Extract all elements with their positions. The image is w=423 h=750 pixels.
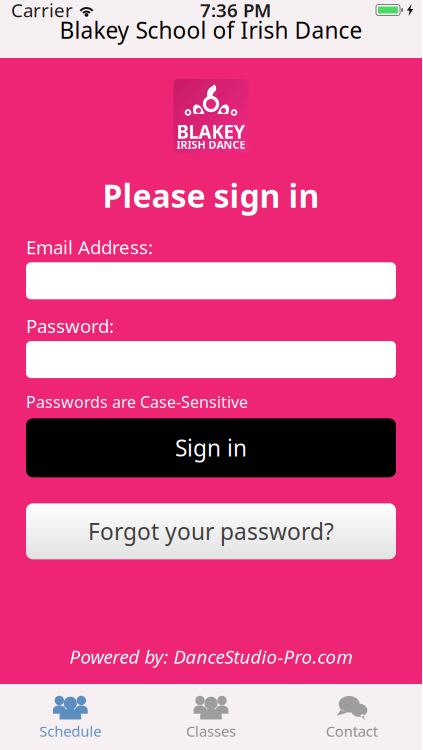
staticText: Blakey School of Irish Dance [59,15,362,45]
staticText: IRISH DANCE [176,137,245,152]
staticText: Forgot your password? [88,516,334,546]
button[interactable]: Classes [141,687,281,747]
staticText: Passwords are Case-Sensitive [26,391,248,412]
staticText: Please sign in [102,174,319,216]
staticText: 7:36 PM [200,0,271,22]
staticText: Email Address: [26,234,153,259]
staticText: Carrier [11,0,73,22]
staticText: Schedule [39,721,101,741]
staticText: Contact [326,721,378,741]
staticText: Classes [186,721,236,741]
staticText: BLAKEY [176,119,245,144]
button[interactable]: Sign in [26,418,396,477]
button[interactable]: Forgot your password? [26,503,396,559]
staticText: Password: [26,313,114,338]
button[interactable]: Contact [281,687,422,747]
staticText: Powered by: DanceStudio-Pro.com [69,644,352,669]
staticText: Sign in [175,433,247,463]
button[interactable]: Schedule [0,687,141,747]
